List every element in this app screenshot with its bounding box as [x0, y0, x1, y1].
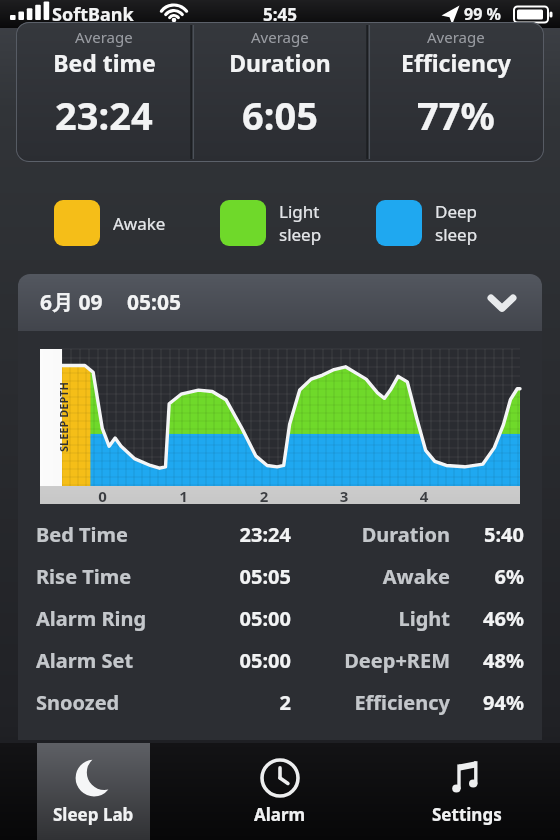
other: Alarm: [260, 758, 300, 798]
staticText: Bed time: [53, 47, 156, 78]
staticText: 05:05: [176, 563, 291, 590]
staticText: 6月 09: [40, 288, 103, 317]
button[interactable]: Average: [16, 22, 544, 162]
button[interactable]: Light: [220, 200, 322, 246]
button[interactable]: 6月 09: [18, 274, 542, 331]
staticText: 2: [176, 689, 291, 716]
staticText: sleep: [435, 223, 478, 246]
staticText: Snoozed: [36, 689, 176, 716]
staticText: Efficiency: [301, 689, 450, 716]
staticText: 4: [384, 486, 464, 504]
button[interactable]: Awake: [54, 200, 166, 246]
staticText: Efficiency: [401, 47, 511, 78]
staticText: 23:24: [176, 521, 291, 548]
staticText: Awake: [113, 212, 166, 235]
staticText: 3: [304, 486, 384, 504]
staticText: Light: [279, 200, 320, 223]
staticText: 48%: [462, 647, 524, 674]
staticText: 6%: [462, 563, 524, 590]
button[interactable]: Alarm: [223, 743, 336, 840]
staticText: 99 %: [464, 3, 501, 25]
button[interactable]: Deep: [376, 200, 478, 246]
staticText: 23:24: [55, 89, 153, 141]
staticText: 05:00: [176, 605, 291, 632]
staticText: 05:05: [127, 288, 181, 317]
staticText: Alarm: [254, 803, 306, 826]
staticText: 6:05: [242, 89, 318, 141]
staticText: 77%: [417, 89, 495, 141]
staticText: Settings: [432, 803, 502, 826]
button[interactable]: Alarm Ring: [36, 597, 524, 639]
staticText: 1: [143, 486, 224, 504]
button[interactable]: Sleep Lab: [37, 743, 150, 840]
staticText: sleep: [279, 223, 322, 246]
staticText: Sleep Lab: [53, 803, 134, 826]
staticText: 0: [62, 486, 143, 504]
staticText: Light: [301, 605, 450, 632]
staticText: Deep: [435, 200, 478, 223]
staticText: SoftBank: [52, 2, 134, 27]
staticText: Average: [75, 27, 133, 47]
staticText: Average: [427, 27, 485, 47]
staticText: Rise Time: [36, 563, 176, 590]
staticText: Alarm Ring: [36, 605, 176, 632]
staticText: Alarm Set: [36, 647, 176, 674]
staticText: 05:00: [176, 647, 291, 674]
staticText: 5:45: [263, 3, 297, 26]
staticText: Duration: [229, 47, 331, 78]
button[interactable]: Rise Time: [36, 555, 524, 597]
staticText: Awake: [301, 563, 450, 590]
staticText: Deep+REM: [301, 647, 450, 674]
staticText: Average: [251, 27, 309, 47]
staticText: 94%: [462, 689, 524, 716]
button[interactable]: Snoozed: [36, 681, 524, 723]
button[interactable]: Settings: [410, 743, 523, 840]
other: Collapse details: [488, 294, 516, 312]
button[interactable]: Bed Time: [36, 513, 524, 555]
staticText: 5:40: [462, 521, 524, 548]
staticText: 2: [224, 486, 304, 504]
other: Settings: [447, 758, 487, 798]
staticText: 46%: [462, 605, 524, 632]
staticText: Duration: [301, 521, 450, 548]
other: Sleep Lab: [74, 758, 114, 798]
staticText: SLEEP DEPTH: [56, 381, 71, 452]
button[interactable]: Alarm Set: [36, 639, 524, 681]
staticText: Bed Time: [36, 521, 176, 548]
